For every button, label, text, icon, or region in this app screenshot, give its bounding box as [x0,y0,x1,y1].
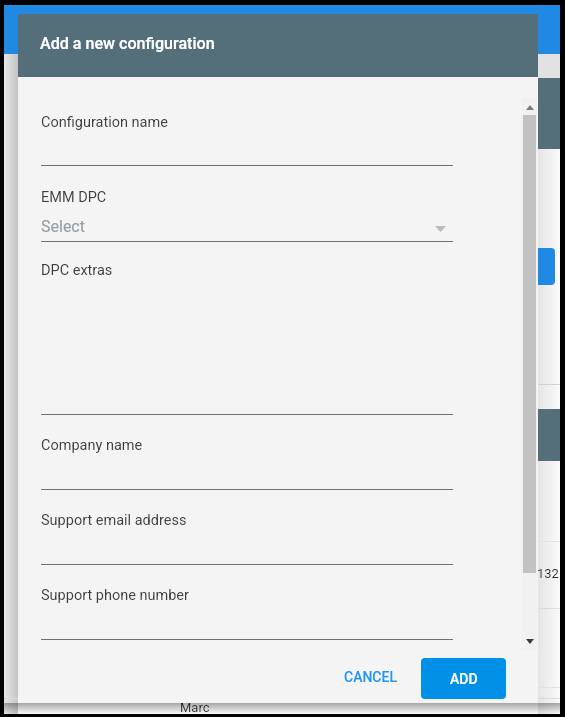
staticText: CANCEL [344,669,397,685]
staticText: Company name [41,437,143,454]
button[interactable]: ADD [421,658,506,699]
staticText: Marc [180,700,210,715]
staticText: DPC extras [41,262,113,279]
staticText: Support phone number [41,587,189,604]
staticText: EMM DPC [41,189,107,206]
other: Scroll down [526,639,534,644]
other: Open EMM DPC dropdown [435,226,446,232]
staticText: Configuration name [41,114,168,131]
staticText: Select [41,217,85,236]
staticText: Support email address [41,512,187,529]
staticText: ADD [450,671,478,687]
staticText: Add a new configuration [40,34,215,53]
staticText: 132 [537,566,559,581]
other: Scroll up [526,105,534,110]
button[interactable]: CANCEL [332,659,409,695]
